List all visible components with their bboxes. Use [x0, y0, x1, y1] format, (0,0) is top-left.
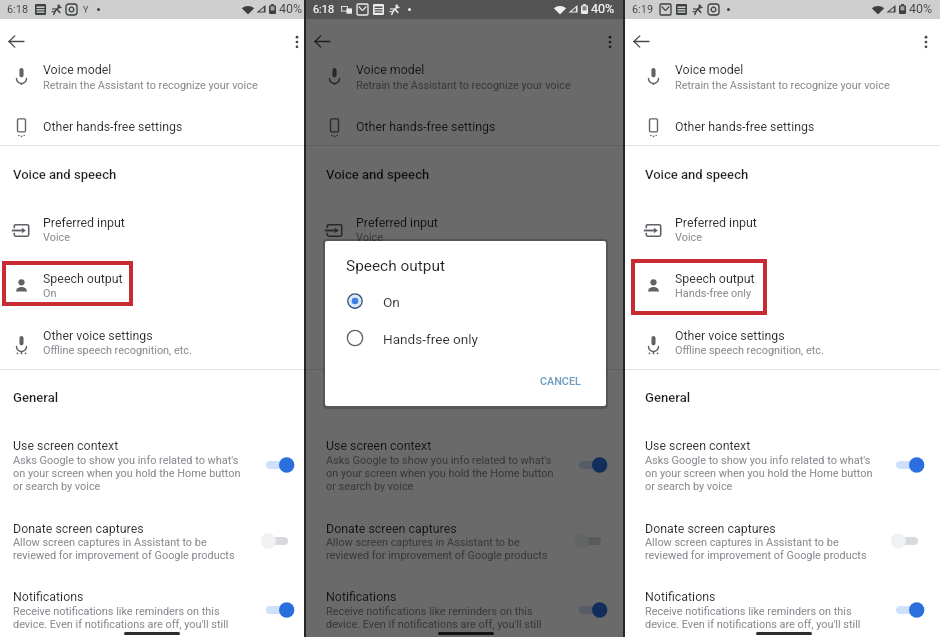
staticText: Preferred input — [43, 215, 125, 230]
button[interactable] — [625, 107, 940, 145]
staticText: Notifications — [13, 589, 84, 604]
staticText: reviewed for improvement of Google produ… — [326, 549, 548, 562]
button[interactable] — [0, 323, 304, 365]
staticText: Retrain the Assistant to recognize your … — [356, 79, 571, 92]
button[interactable]: More options — [283, 28, 311, 56]
button[interactable]: More options — [596, 28, 624, 56]
staticText: Receive notifications like reminders on … — [645, 605, 852, 618]
staticText: Use screen context — [645, 438, 751, 453]
button[interactable] — [625, 519, 940, 569]
staticText: On — [43, 287, 57, 300]
staticText: Voice and speech — [13, 167, 117, 182]
button[interactable]: Toggle on — [571, 600, 609, 620]
button[interactable] — [625, 588, 940, 637]
staticText: Use screen context — [13, 438, 119, 453]
button[interactable]: Toggle off — [571, 531, 609, 551]
button[interactable]: Toggle off — [258, 531, 296, 551]
staticText: Asks Google to show you info related to … — [13, 454, 239, 467]
staticText: Allow screen captures in Assistant to be — [326, 536, 520, 549]
button[interactable]: Back — [308, 27, 336, 55]
staticText: Receive notifications like reminders on … — [13, 605, 220, 618]
staticText: Voice — [43, 231, 71, 244]
button[interactable] — [0, 436, 304, 498]
staticText: Asks Google to show you info related to … — [326, 454, 552, 467]
button[interactable] — [625, 323, 940, 365]
staticText: Donate screen captures — [13, 521, 144, 536]
staticText: Retrain the Assistant to recognize your … — [43, 79, 258, 92]
staticText: Speech output — [356, 271, 436, 286]
button[interactable]: Toggle on — [571, 455, 609, 475]
staticText: Voice — [675, 231, 703, 244]
staticText: Other voice settings — [43, 328, 153, 343]
button[interactable] — [335, 287, 596, 317]
staticText: Asks Google to show you info related to … — [645, 454, 871, 467]
button[interactable] — [335, 324, 596, 354]
button[interactable] — [306, 519, 623, 569]
button[interactable] — [0, 107, 304, 145]
staticText: or search by voice — [13, 480, 101, 493]
staticText: 6:18 — [7, 3, 28, 16]
button[interactable]: Toggle on — [888, 455, 926, 475]
staticText: reviewed for improvement of Google produ… — [13, 549, 235, 562]
button[interactable] — [0, 588, 304, 637]
staticText: On — [356, 287, 370, 300]
button[interactable] — [306, 266, 623, 308]
staticText: 6:19 — [632, 3, 653, 16]
staticText: Preferred input — [356, 215, 438, 230]
button[interactable] — [306, 58, 623, 98]
button[interactable] — [625, 266, 940, 308]
staticText: 40% — [279, 1, 303, 16]
staticText: Donate screen captures — [326, 521, 457, 536]
button[interactable]: Toggle on — [258, 600, 296, 620]
staticText: Other hands-free settings — [43, 119, 183, 134]
staticText: Offline speech recognition, etc. — [675, 344, 824, 357]
button[interactable] — [0, 519, 304, 569]
staticText: Other hands-free settings — [356, 119, 496, 134]
staticText: Hands-free only — [383, 331, 479, 347]
staticText: 6:18 — [313, 3, 334, 16]
staticText: CANCEL — [540, 375, 581, 388]
staticText: Notifications — [326, 589, 397, 604]
button[interactable]: CANCEL — [529, 369, 591, 394]
staticText: 40% — [591, 1, 615, 16]
button[interactable] — [0, 266, 304, 308]
staticText: Speech output — [346, 257, 445, 275]
staticText: Use screen context — [326, 438, 432, 453]
button[interactable]: Toggle on — [258, 455, 296, 475]
staticText: Voice — [356, 231, 384, 244]
button[interactable] — [625, 436, 940, 498]
staticText: Voice model — [43, 62, 112, 77]
button[interactable] — [306, 588, 623, 637]
staticText: device. Even if notifications are off, y… — [326, 618, 542, 631]
staticText: 6:18 — [313, 3, 334, 16]
button[interactable] — [306, 436, 623, 498]
button[interactable]: Toggle off — [888, 531, 926, 551]
button[interactable]: Back — [2, 27, 30, 55]
button[interactable] — [0, 58, 304, 98]
staticText: Retrain the Assistant to recognize your … — [675, 79, 890, 92]
staticText: On — [383, 294, 400, 310]
staticText: or search by voice — [326, 480, 414, 493]
staticText: on your screen when you hold the Home bu… — [645, 467, 873, 480]
button[interactable] — [306, 210, 623, 252]
button[interactable]: Toggle on — [888, 600, 926, 620]
staticText: Allow screen captures in Assistant to be — [13, 536, 207, 549]
staticText: Other voice settings — [675, 328, 785, 343]
staticText: or search by voice — [645, 480, 733, 493]
staticText: Speech output — [675, 271, 755, 286]
staticText: 40% — [909, 1, 933, 16]
button[interactable]: Back — [627, 27, 655, 55]
staticText: Hands-free only — [675, 287, 752, 300]
staticText: reviewed for improvement of Google produ… — [645, 549, 867, 562]
button[interactable] — [306, 323, 623, 365]
button[interactable] — [625, 58, 940, 98]
button[interactable]: More options — [912, 28, 940, 56]
staticText: on your screen when you hold the Home bu… — [13, 467, 241, 480]
button[interactable] — [625, 210, 940, 252]
staticText: General — [645, 390, 691, 405]
button[interactable] — [0, 210, 304, 252]
staticText: 40% — [591, 1, 615, 16]
button[interactable] — [306, 107, 623, 145]
staticText: Allow screen captures in Assistant to be — [645, 536, 839, 549]
